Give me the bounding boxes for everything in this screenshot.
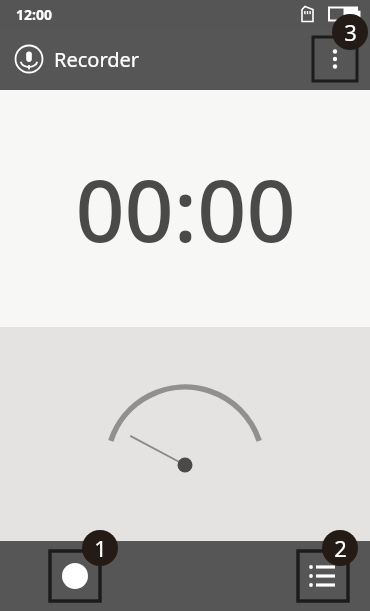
button[interactable]: More options: [313, 37, 357, 81]
staticText: 00:00: [75, 150, 296, 267]
staticText: 2: [334, 533, 347, 563]
staticText: 12:00: [16, 5, 52, 24]
button[interactable]: Record: [50, 551, 100, 601]
button[interactable]: Recordings list: [298, 551, 348, 601]
staticText: Recorder: [54, 46, 140, 73]
staticText: 3: [344, 17, 357, 47]
staticText: 1: [94, 533, 107, 563]
